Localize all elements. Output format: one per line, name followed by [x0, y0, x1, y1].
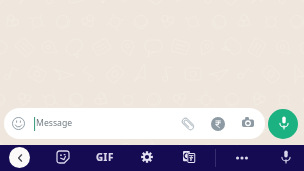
button[interactable]: Emoji	[7, 112, 29, 134]
button[interactable]: Settings	[139, 149, 155, 165]
button[interactable]: Back	[9, 147, 30, 168]
button[interactable]: Payment	[210, 116, 225, 131]
button[interactable]: Stickers	[55, 149, 71, 165]
staticText: Message	[36, 117, 73, 129]
button[interactable]: Translate	[181, 149, 197, 165]
button[interactable]: Attach	[180, 116, 195, 131]
button[interactable]: More options	[234, 150, 250, 166]
button[interactable]: Voice input	[277, 149, 293, 165]
button[interactable]: Voice message	[268, 109, 298, 139]
button[interactable]	[4, 108, 265, 139]
button[interactable]: GIF	[93, 149, 117, 165]
button[interactable]: Camera	[240, 116, 255, 131]
staticText: GIF	[96, 151, 114, 164]
